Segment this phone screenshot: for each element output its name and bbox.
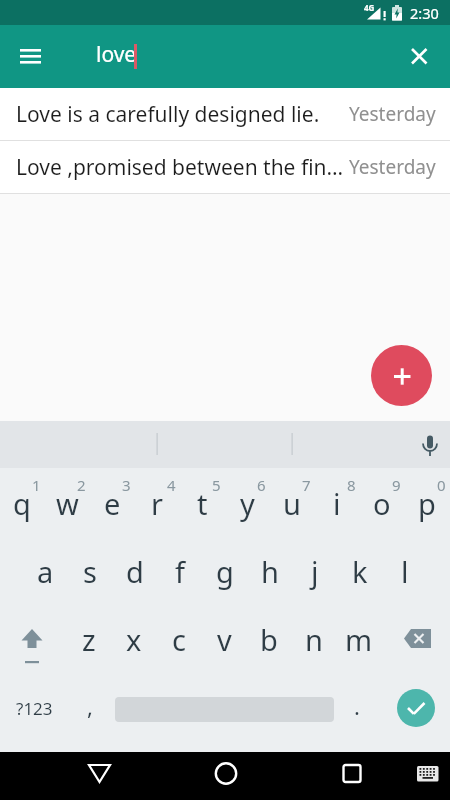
staticText: 7 xyxy=(302,475,311,493)
staticText: z xyxy=(82,620,96,659)
button[interactable] xyxy=(201,752,249,800)
staticText: a xyxy=(37,552,54,591)
staticText: h xyxy=(261,552,279,591)
staticText: f xyxy=(175,552,185,591)
staticText: love xyxy=(96,40,137,69)
staticText: , xyxy=(87,691,93,721)
button[interactable]: Love ,promised between the fingers. xyxy=(0,141,450,193)
staticText: Love ,promised between the fingers. xyxy=(16,153,349,182)
button[interactable] xyxy=(399,620,439,660)
staticText: g xyxy=(216,552,234,591)
staticText: ?123 xyxy=(16,697,53,720)
staticText: t xyxy=(197,484,208,523)
staticText: v xyxy=(217,620,232,659)
staticText: 3 xyxy=(122,475,131,493)
button[interactable] xyxy=(405,752,450,797)
staticText: s xyxy=(83,552,97,591)
staticText: 9 xyxy=(392,475,401,493)
staticText: 4G xyxy=(364,2,375,12)
staticText: Yesterday xyxy=(349,154,436,180)
staticText: y xyxy=(240,484,255,523)
staticText: 6 xyxy=(257,475,266,493)
staticText: r xyxy=(151,484,163,523)
button[interactable] xyxy=(371,345,432,406)
staticText: u xyxy=(283,484,301,523)
staticText: m xyxy=(345,620,373,659)
button[interactable] xyxy=(12,620,52,660)
staticText: o xyxy=(373,484,391,523)
staticText: d xyxy=(126,552,144,591)
staticText: k xyxy=(352,552,368,591)
staticText: 2:30 xyxy=(410,3,439,23)
staticText: Yesterday xyxy=(349,101,436,127)
staticText: n xyxy=(305,620,323,659)
staticText: 5 xyxy=(212,475,221,493)
staticText: 0 xyxy=(437,475,446,493)
staticText: 8 xyxy=(347,475,356,493)
staticText: . xyxy=(354,691,360,721)
button[interactable] xyxy=(402,39,437,74)
button[interactable] xyxy=(327,752,375,800)
staticText: w xyxy=(56,484,79,523)
staticText: 1 xyxy=(32,475,41,493)
staticText: j xyxy=(311,552,319,591)
staticText: x xyxy=(126,620,142,659)
staticText: c xyxy=(172,620,186,659)
staticText: 2 xyxy=(77,475,86,493)
button[interactable] xyxy=(75,752,123,800)
staticText: q xyxy=(13,484,31,523)
staticText: 4 xyxy=(167,475,176,493)
staticText: l xyxy=(401,552,409,591)
staticText: p xyxy=(418,484,436,523)
staticText: i xyxy=(333,484,341,523)
staticText: e xyxy=(104,484,121,523)
button[interactable] xyxy=(397,689,435,727)
staticText: Love is a carefully designed lie. xyxy=(16,100,349,129)
button[interactable] xyxy=(12,40,48,76)
staticText: b xyxy=(260,620,278,659)
button[interactable]: Love is a carefully designed lie. xyxy=(0,88,450,140)
